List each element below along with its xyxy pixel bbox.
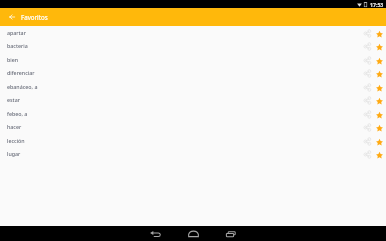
staticText: lección xyxy=(7,137,25,144)
button[interactable]: Share xyxy=(362,107,373,120)
button[interactable]: Favorite xyxy=(373,26,385,39)
staticText: Favoritos xyxy=(21,13,48,21)
button[interactable]: ebanáceo, a xyxy=(0,80,386,93)
button[interactable]: Share xyxy=(362,26,373,39)
button[interactable]: Share xyxy=(362,53,373,66)
button[interactable]: Favorite xyxy=(373,39,385,52)
button[interactable]: Favorite xyxy=(373,66,385,79)
staticText: febeo, a xyxy=(7,110,28,117)
button[interactable]: Favorite xyxy=(373,147,385,160)
button[interactable]: Favorite xyxy=(373,93,385,106)
button[interactable]: Share xyxy=(362,120,373,133)
button[interactable]: estar xyxy=(0,93,386,106)
button[interactable]: Share xyxy=(362,93,373,106)
button[interactable]: bacteria xyxy=(0,39,386,52)
staticText: ebanáceo, a xyxy=(7,83,38,90)
staticText: 17:53 xyxy=(370,1,384,8)
staticText: diferenciar xyxy=(7,69,35,76)
staticText: estar xyxy=(7,96,20,103)
staticText: apartar xyxy=(7,29,26,36)
button[interactable]: Favorite xyxy=(373,53,385,66)
button[interactable]: Share xyxy=(362,39,373,52)
button[interactable]: Home xyxy=(186,226,200,241)
button[interactable]: hacer xyxy=(0,120,386,133)
staticText: bien xyxy=(7,56,19,63)
button[interactable]: Back xyxy=(0,8,23,26)
button[interactable]: apartar xyxy=(0,26,386,39)
button[interactable]: lección xyxy=(0,134,386,147)
button[interactable]: Favorite xyxy=(373,107,385,120)
button[interactable]: bien xyxy=(0,53,386,66)
staticText: bacteria xyxy=(7,42,28,49)
button[interactable]: Recents xyxy=(224,226,238,241)
button[interactable]: Favorite xyxy=(373,80,385,93)
button[interactable]: Favorite xyxy=(373,120,385,133)
button[interactable]: febeo, a xyxy=(0,107,386,120)
button[interactable]: Share xyxy=(362,134,373,147)
button[interactable]: Share xyxy=(362,147,373,160)
button[interactable]: Share xyxy=(362,80,373,93)
button[interactable]: diferenciar xyxy=(0,66,386,79)
button[interactable]: Back xyxy=(148,226,162,241)
button[interactable]: lugar xyxy=(0,147,386,160)
staticText: lugar xyxy=(7,150,21,157)
staticText: hacer xyxy=(7,123,22,130)
button[interactable]: Share xyxy=(362,66,373,79)
button[interactable]: Favorite xyxy=(373,134,385,147)
